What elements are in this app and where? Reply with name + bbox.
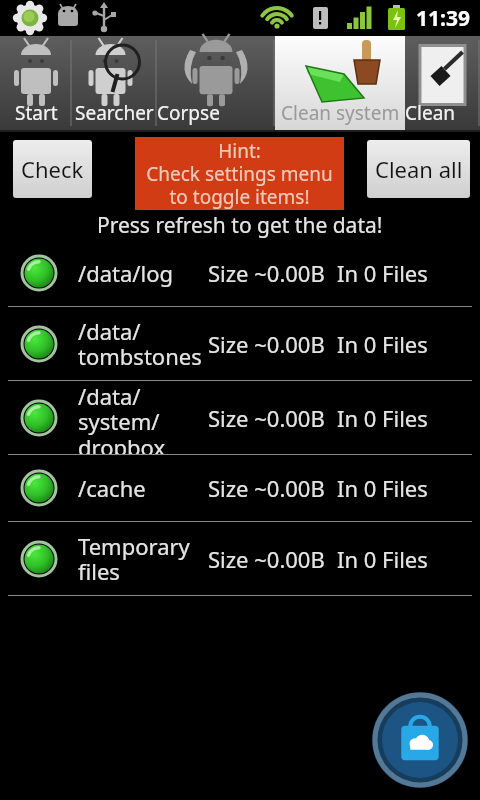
staticText: /data/log xyxy=(78,258,208,288)
button[interactable]: Start xyxy=(0,36,72,130)
staticText: Corpse finder xyxy=(157,100,275,126)
staticText: In 0 Files xyxy=(337,258,428,288)
staticText: /data/ tombstones xyxy=(78,316,208,372)
button[interactable]: Clean system xyxy=(275,36,405,130)
staticText: 11:39 xyxy=(416,4,470,33)
staticText: Hint: Check settings menu to toggle item… xyxy=(146,138,333,210)
button[interactable]: /data/system/ dropbox xyxy=(0,381,480,454)
staticText: Press refresh to get the data! xyxy=(97,211,383,240)
staticText: Size ~0.00B xyxy=(208,473,337,503)
staticText: /data/system/ dropbox xyxy=(78,381,208,454)
staticText: Searcher xyxy=(75,100,154,126)
button[interactable]: Check xyxy=(13,140,92,198)
button[interactable]: Temporary files xyxy=(0,522,480,595)
staticText: Clean system xyxy=(281,100,400,126)
staticText: Size ~0.00B xyxy=(208,258,337,288)
staticText: Size ~0.00B xyxy=(208,544,337,574)
staticText: /cache xyxy=(78,473,208,503)
staticText: Clean all xyxy=(375,154,463,184)
button[interactable]: /cache xyxy=(0,455,480,521)
button[interactable]: Clean all xyxy=(367,140,470,198)
staticText: Size ~0.00B xyxy=(208,329,337,359)
button[interactable]: Corpse finder xyxy=(157,36,275,130)
button[interactable]: /data/ tombstones xyxy=(0,307,480,380)
button[interactable]: /data/log xyxy=(0,240,480,306)
staticText: In 0 Files xyxy=(337,329,428,359)
staticText: In 0 Files xyxy=(337,473,428,503)
staticText: Check xyxy=(21,154,84,184)
staticText: Temporary files xyxy=(78,531,208,587)
staticText: In 0 Files xyxy=(337,403,428,433)
button[interactable]: Searcher xyxy=(72,36,157,130)
staticText: Start xyxy=(15,100,58,126)
staticText: Clean app xyxy=(405,100,480,126)
button[interactable]: Hint: Check settings menu to toggle item… xyxy=(135,137,344,210)
staticText: In 0 Files xyxy=(337,544,428,574)
staticText: Size ~0.00B xyxy=(208,403,337,433)
button[interactable]: Clean app xyxy=(405,36,480,130)
